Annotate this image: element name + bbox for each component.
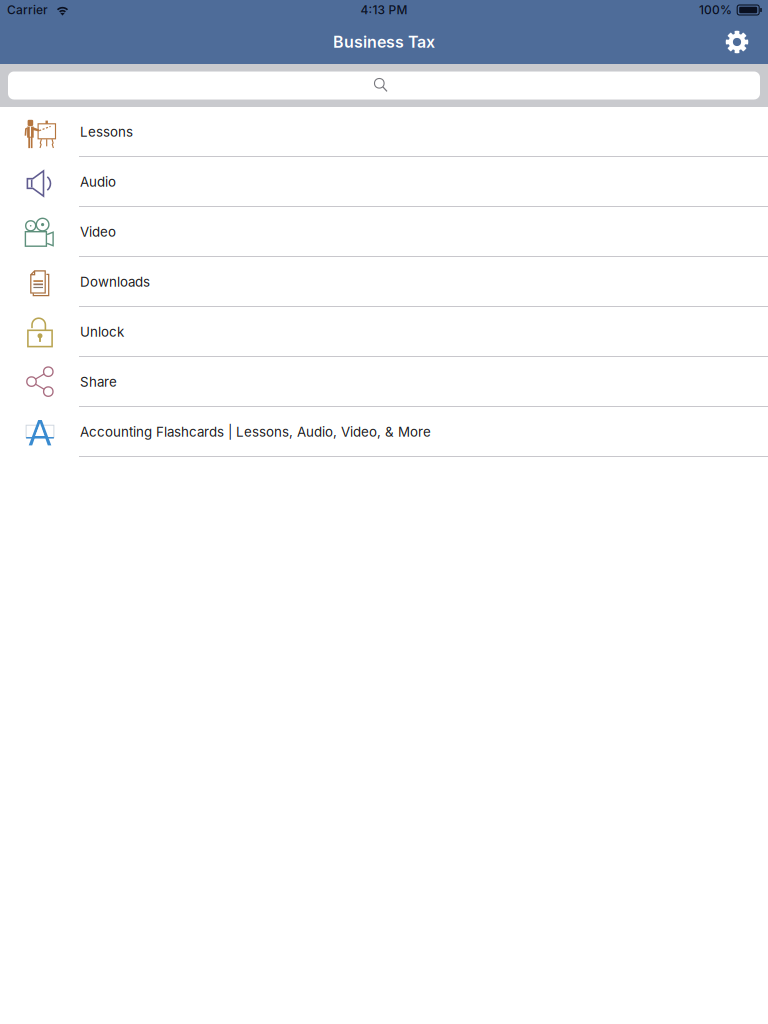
- button[interactable]: Search: [8, 71, 760, 99]
- button[interactable]: Audio: [0, 157, 768, 207]
- button[interactable]: Accounting Flashcards | Lessons, Audio, …: [0, 407, 768, 457]
- staticText: Video: [80, 224, 116, 240]
- staticText: Audio: [80, 174, 116, 190]
- staticText: Downloads: [80, 274, 150, 290]
- staticText: Lessons: [80, 124, 133, 140]
- button[interactable]: Lessons: [0, 107, 768, 157]
- staticText: Share: [80, 374, 117, 390]
- staticText: Business Tax: [333, 33, 435, 51]
- button[interactable]: Unlock: [0, 307, 768, 357]
- staticText: Carrier: [7, 3, 48, 17]
- button[interactable]: Downloads: [0, 257, 768, 307]
- staticText: 4:13 PM: [360, 3, 407, 17]
- staticText: Unlock: [80, 324, 124, 340]
- button[interactable]: Share: [0, 357, 768, 407]
- staticText: Accounting Flashcards | Lessons, Audio, …: [80, 424, 431, 440]
- button[interactable]: Settings: [715, 20, 759, 64]
- staticText: 100%: [699, 3, 732, 17]
- button[interactable]: Video: [0, 207, 768, 257]
